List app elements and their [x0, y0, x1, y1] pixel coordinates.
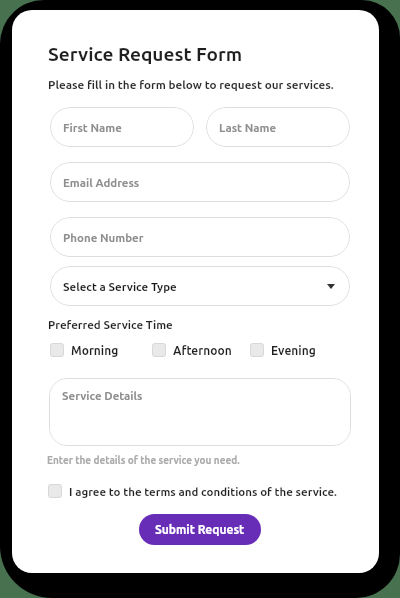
button[interactable]: Last Name: [206, 107, 350, 147]
button[interactable]: Phone Number: [50, 217, 350, 257]
staticText: Service Request Form: [48, 43, 243, 64]
button[interactable]: I agree to the terms and conditions of t…: [48, 484, 337, 498]
button[interactable]: Evening: [250, 343, 316, 357]
button[interactable]: Email Address: [50, 162, 350, 202]
staticText: Preferred Service Time: [48, 318, 173, 331]
staticText: Last Name: [219, 121, 277, 134]
staticText: Evening: [271, 344, 316, 357]
staticText: Afternoon: [173, 344, 232, 357]
staticText: Select a Service Type: [63, 280, 177, 293]
staticText: Email Address: [63, 176, 140, 189]
button[interactable]: Service Details: [49, 378, 351, 446]
staticText: Service Details: [62, 389, 143, 402]
staticText: Morning: [71, 344, 119, 357]
button[interactable]: Select a Service Type: [50, 266, 350, 306]
staticText: I agree to the terms and conditions of t…: [69, 485, 337, 498]
button[interactable]: Morning: [50, 343, 119, 357]
button[interactable]: Afternoon: [152, 343, 232, 357]
button[interactable]: Submit Request: [139, 514, 261, 545]
staticText: Please fill in the form below to request…: [48, 78, 334, 91]
staticText: Phone Number: [63, 231, 144, 244]
staticText: First Name: [63, 121, 122, 134]
button[interactable]: First Name: [50, 107, 194, 147]
staticText: Submit Request: [155, 523, 245, 536]
staticText: Enter the details of the service you nee…: [47, 455, 240, 466]
